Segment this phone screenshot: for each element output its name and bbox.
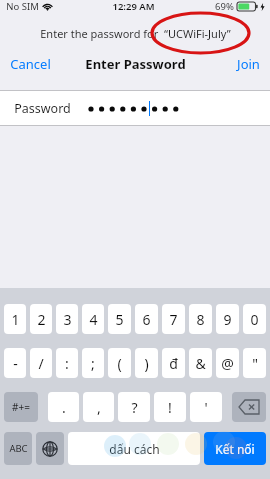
- button[interactable]: 9: [216, 304, 239, 334]
- button[interactable]: 7: [162, 304, 185, 334]
- button[interactable]: ): [135, 348, 158, 378]
- staticText: (: [117, 354, 122, 373]
- staticText: ": [252, 354, 258, 373]
- staticText: No SIM: [6, 0, 39, 13]
- staticText: dấu cách: [109, 441, 160, 457]
- staticText: 2: [37, 310, 46, 329]
- button[interactable]: [36, 432, 64, 465]
- button[interactable]: @: [216, 348, 239, 378]
- staticText: @: [221, 354, 234, 373]
- other: Change keyboard: [36, 432, 64, 465]
- button[interactable]: Cancel: [0, 51, 61, 77]
- staticText: 12:29 AM: [112, 0, 155, 13]
- button[interactable]: Kết nối: [204, 432, 266, 465]
- button[interactable]: 3: [56, 304, 78, 334]
- staticText: :: [65, 354, 69, 373]
- staticText: Cancel: [10, 55, 51, 73]
- button[interactable]: dấu cách: [68, 432, 200, 465]
- staticText: /: [38, 354, 44, 373]
- button[interactable]: &: [189, 348, 212, 378]
- staticText: Enter the password for “UCWiFi-July”: [40, 26, 231, 41]
- button[interactable]: ": [243, 348, 266, 378]
- staticText: 69%: [215, 0, 234, 13]
- staticText: 3: [63, 310, 72, 329]
- button[interactable]: .: [48, 392, 79, 422]
- staticText: ABC: [9, 442, 28, 455]
- staticText: Password: [14, 100, 71, 117]
- button[interactable]: (: [108, 348, 131, 378]
- button[interactable]: đ: [162, 348, 185, 378]
- staticText: 8: [196, 310, 205, 329]
- staticText: 0: [250, 310, 259, 329]
- staticText: 1: [11, 310, 20, 329]
- button[interactable]: 0: [243, 304, 266, 334]
- staticText: ): [144, 354, 149, 373]
- button[interactable]: [232, 392, 266, 422]
- staticText: &: [195, 354, 206, 373]
- button[interactable]: ': [190, 392, 222, 422]
- staticText: Enter Password: [85, 55, 186, 73]
- staticText: Kết nối: [215, 441, 255, 457]
- staticText: 7: [169, 310, 178, 329]
- staticText: .: [62, 398, 66, 417]
- button[interactable]: 8: [189, 304, 212, 334]
- staticText: ': [204, 398, 208, 417]
- staticText: Join: [237, 55, 260, 73]
- staticText: !: [168, 398, 172, 417]
- staticText: #+=: [12, 400, 30, 414]
- staticText: 4: [89, 310, 98, 329]
- button[interactable]: /: [30, 348, 52, 378]
- staticText: ?: [131, 398, 138, 417]
- button[interactable]: #+=: [4, 392, 38, 422]
- button[interactable]: Join: [227, 51, 270, 77]
- staticText: -: [13, 354, 18, 373]
- button[interactable]: :: [56, 348, 78, 378]
- staticText: 9: [223, 310, 232, 329]
- button[interactable]: 2: [30, 304, 52, 334]
- button[interactable]: 5: [108, 304, 131, 334]
- staticText: 5: [115, 310, 124, 329]
- button[interactable]: 6: [135, 304, 158, 334]
- button[interactable]: ?: [118, 392, 150, 422]
- button[interactable]: 4: [82, 304, 104, 334]
- button[interactable]: -: [4, 348, 26, 378]
- button[interactable]: Password: [0, 91, 270, 125]
- button[interactable]: ;: [82, 348, 104, 378]
- button[interactable]: !: [154, 392, 186, 422]
- other: Backspace: [232, 392, 266, 422]
- staticText: 6: [142, 310, 151, 329]
- button[interactable]: 1: [4, 304, 26, 334]
- staticText: ,: [97, 398, 101, 417]
- button[interactable]: ABC: [4, 432, 32, 465]
- staticText: đ: [169, 354, 178, 373]
- button[interactable]: ,: [83, 392, 114, 422]
- staticText: ;: [91, 354, 95, 373]
